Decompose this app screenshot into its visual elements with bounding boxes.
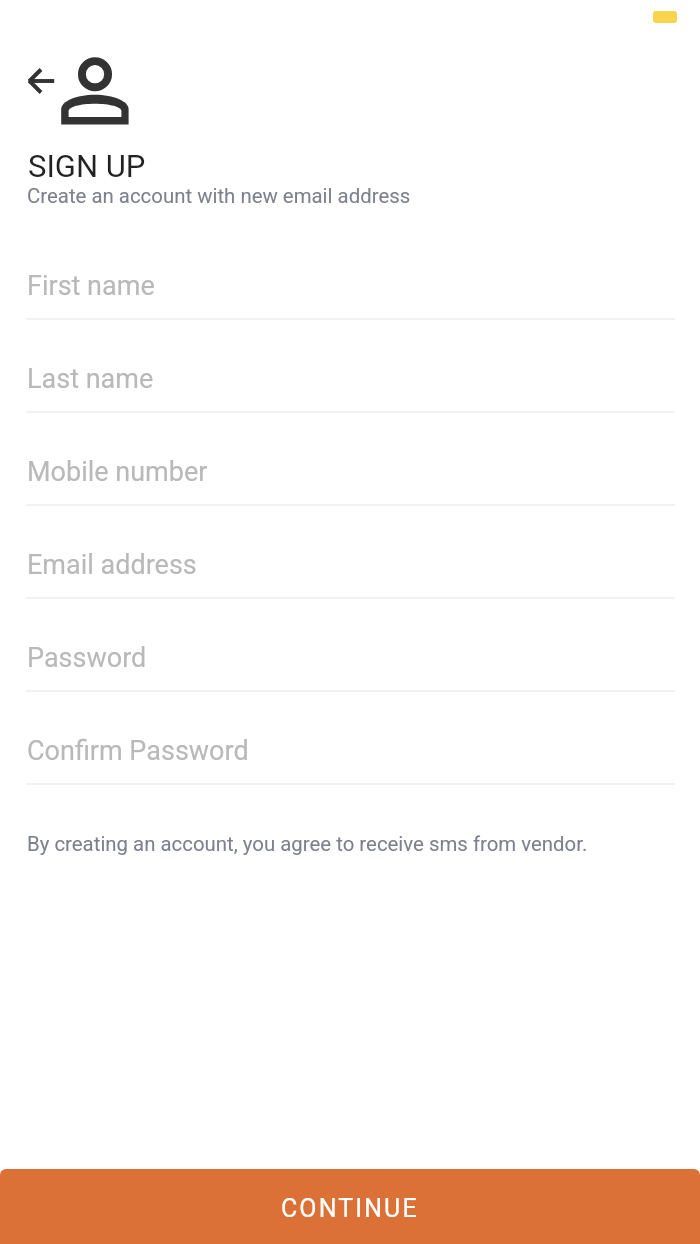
staticText: Password bbox=[27, 642, 147, 674]
staticText: Create an account with new email address bbox=[27, 184, 411, 208]
button[interactable]: Back bbox=[16, 60, 62, 102]
button[interactable]: Last name bbox=[0, 320, 700, 413]
staticText: Last name bbox=[27, 363, 154, 395]
button[interactable]: Mobile number bbox=[0, 413, 700, 506]
staticText: Confirm Password bbox=[27, 735, 249, 767]
staticText: CONTINUE bbox=[281, 1194, 419, 1223]
staticText: By creating an account, you agree to rec… bbox=[27, 832, 588, 856]
staticText: Email address bbox=[27, 549, 197, 581]
button[interactable]: Email address bbox=[0, 506, 700, 599]
button[interactable]: Password bbox=[0, 599, 700, 692]
button[interactable]: First name bbox=[0, 227, 700, 320]
button[interactable]: Confirm Password bbox=[0, 692, 700, 785]
staticText: Mobile number bbox=[27, 456, 208, 488]
staticText: First name bbox=[27, 270, 155, 302]
button[interactable]: CONTINUE bbox=[0, 1169, 700, 1244]
staticText: SIGN UP bbox=[28, 148, 146, 184]
